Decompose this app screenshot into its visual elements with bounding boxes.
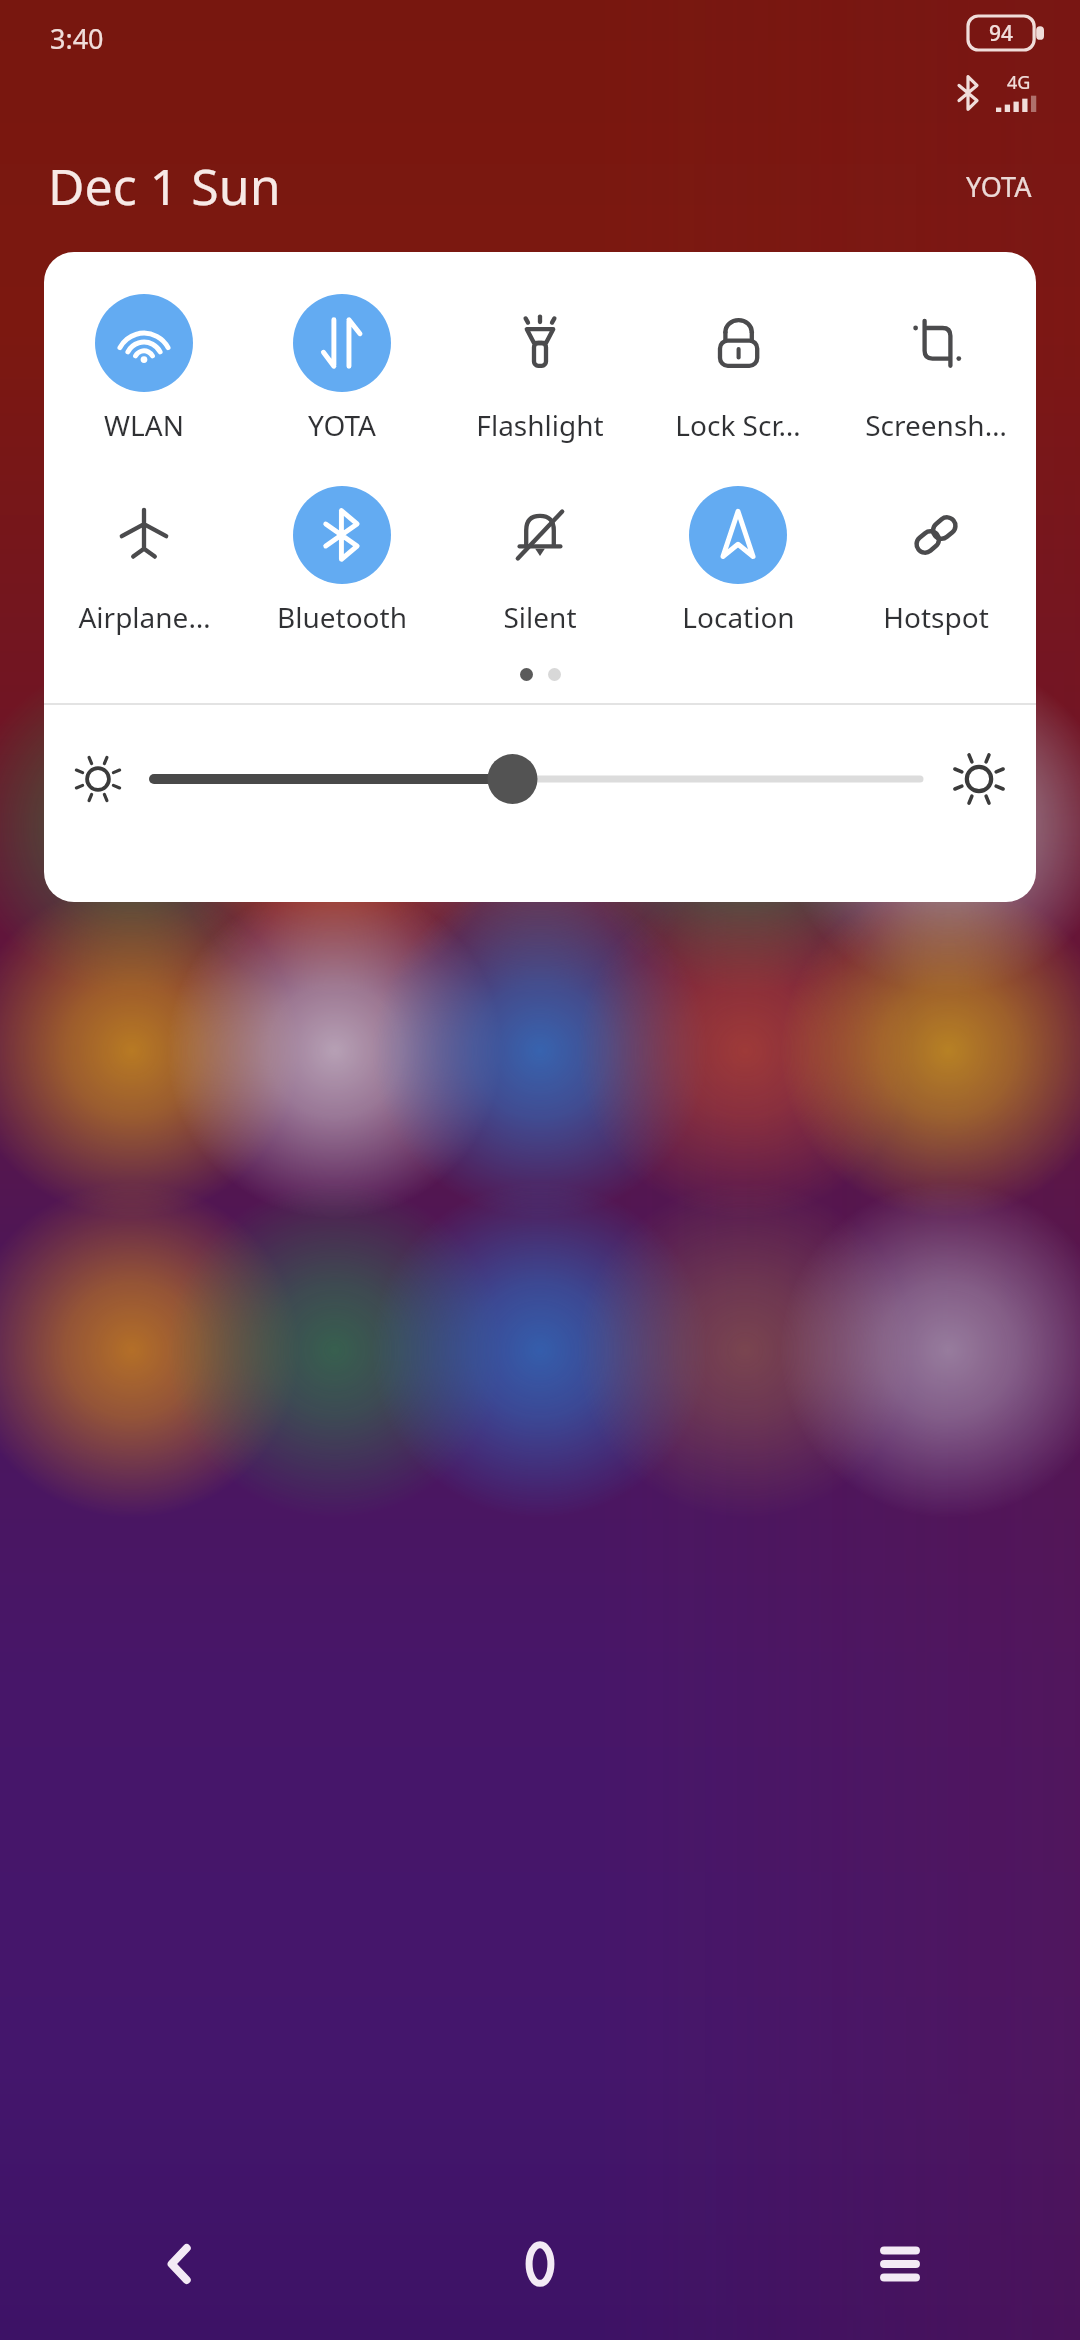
button[interactable] (154, 742, 920, 816)
button[interactable]: Back (0, 2188, 360, 2340)
staticText: Hotspot (883, 598, 989, 636)
button[interactable]: Home (360, 2188, 720, 2340)
button[interactable]: Hotspot (842, 486, 1030, 636)
button[interactable]: YOTA (248, 294, 436, 444)
button[interactable]: WLAN (50, 294, 238, 444)
button[interactable]: Recent apps (720, 2188, 1080, 2340)
staticText: 4G (1007, 70, 1031, 95)
staticText: Bluetooth (277, 598, 407, 636)
button[interactable]: Location (644, 486, 832, 636)
button[interactable]: Silent (446, 486, 634, 636)
button[interactable]: Flashlight (446, 294, 634, 444)
button[interactable]: Lock Scr… (644, 294, 832, 444)
staticText: WLAN (104, 406, 184, 444)
staticText: Flashlight (476, 406, 604, 444)
button[interactable]: Airplane… (50, 486, 238, 636)
button[interactable]: Bluetooth (248, 486, 436, 636)
staticText: 94 (989, 19, 1014, 48)
staticText: Silent (503, 598, 577, 636)
staticText: Location (682, 598, 795, 636)
staticText: YOTA (308, 406, 376, 444)
staticText: 3:40 (50, 20, 104, 57)
button[interactable]: Screensh… (842, 294, 1030, 444)
staticText: Screensh… (865, 406, 1007, 444)
staticText: Lock Scr… (675, 406, 801, 444)
staticText: YOTA (966, 168, 1032, 205)
staticText: Dec 1 Sun (48, 152, 281, 220)
staticText: Airplane… (78, 598, 211, 636)
